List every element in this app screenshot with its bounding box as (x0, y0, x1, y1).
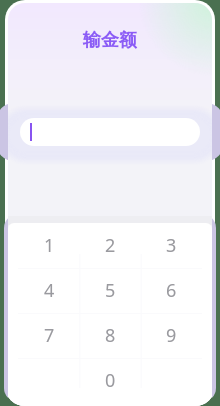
button[interactable]: 6 (141, 268, 202, 313)
button[interactable]: 5 (80, 268, 141, 313)
button[interactable]: 9 (141, 313, 202, 358)
button[interactable]: 1 (18, 223, 80, 268)
staticText: 8 (105, 323, 116, 348)
staticText: 0 (105, 368, 116, 393)
button[interactable]: 4 (18, 268, 80, 313)
staticText: 9 (166, 323, 177, 348)
staticText: 1 (44, 233, 55, 258)
staticText: 2 (105, 233, 116, 258)
button[interactable] (20, 118, 200, 146)
button[interactable]: 0 (80, 358, 141, 403)
staticText: 6 (166, 278, 177, 303)
button[interactable]: 7 (18, 313, 80, 358)
staticText: 7 (44, 323, 55, 348)
staticText: 5 (105, 278, 116, 303)
staticText: 3 (166, 233, 177, 258)
button[interactable]: 2 (80, 223, 141, 268)
button[interactable]: 3 (141, 223, 202, 268)
staticText: 4 (44, 278, 55, 303)
button[interactable]: 8 (80, 313, 141, 358)
staticText: 输金额 (83, 29, 137, 52)
